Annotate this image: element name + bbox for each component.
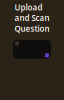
button[interactable]: Send — [45, 53, 49, 57]
staticText: Upload and Scan Question — [14, 2, 49, 34]
